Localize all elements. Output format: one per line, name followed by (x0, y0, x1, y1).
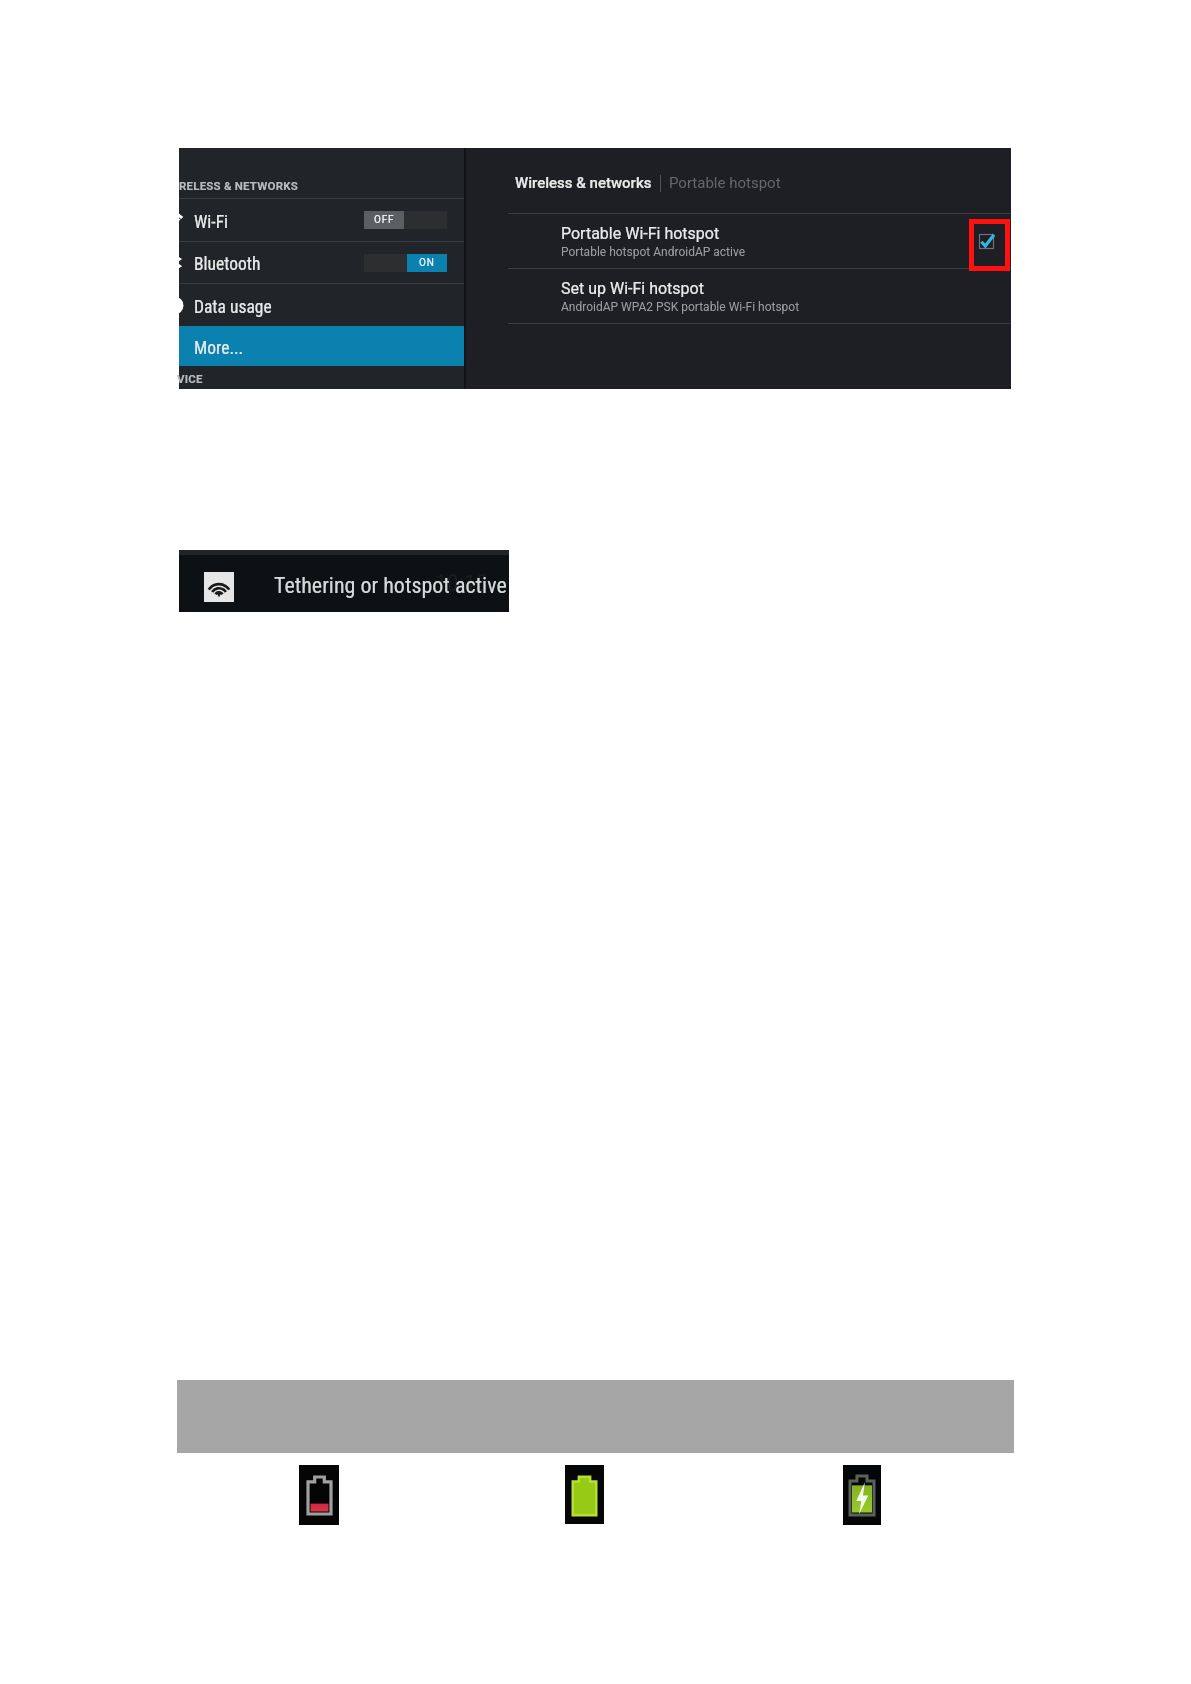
staticText: Portable hotspot AndroidAP active (561, 245, 746, 259)
button[interactable]: Portable Wi-Fi hotspot (466, 214, 1011, 268)
button[interactable]: Bluetooth (179, 242, 464, 283)
staticText: Bluetooth (194, 254, 261, 275)
staticText: More... (194, 338, 244, 359)
button[interactable]: Set up Wi-Fi hotspot (466, 269, 1011, 323)
staticText: Portable Wi-Fi hotspot (561, 224, 720, 243)
button[interactable]: Toggle off (364, 211, 447, 229)
button[interactable]: Wi-Fi (179, 199, 464, 241)
staticText: Portable hotspot (669, 174, 781, 192)
staticText: ON (419, 257, 435, 269)
staticText: OFF (374, 214, 395, 226)
button[interactable]: More... (179, 326, 464, 366)
button[interactable]: Toggle on (364, 254, 447, 272)
button[interactable]: 10:13 (179, 550, 509, 612)
staticText: Tethering or hotspot active (274, 573, 507, 599)
staticText: 10:13 (435, 569, 488, 597)
staticText: AndroidAP WPA2 PSK portable Wi-Fi hotspo… (561, 300, 800, 314)
staticText: Data usage (194, 297, 272, 318)
staticText: VICE (177, 372, 203, 385)
staticText: RELESS & NETWORKS (179, 179, 299, 192)
button[interactable]: Portable Wi-Fi hotspot checkbox (963, 214, 1009, 268)
staticText: Set up Wi-Fi hotspot (561, 279, 704, 298)
staticText: Wi-Fi (194, 212, 229, 233)
button[interactable]: Data usage (179, 284, 464, 326)
staticText: Wireless & networks (515, 174, 652, 192)
